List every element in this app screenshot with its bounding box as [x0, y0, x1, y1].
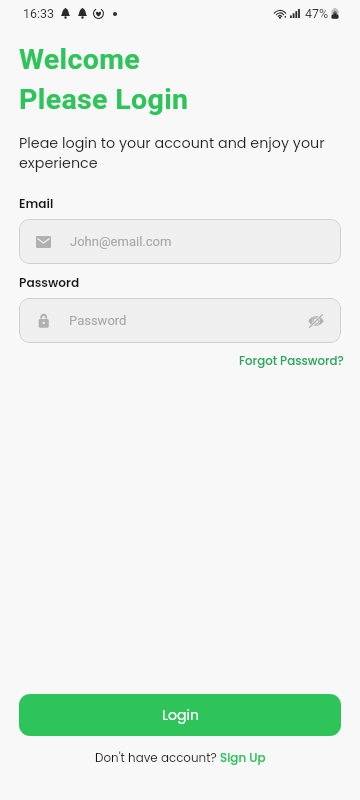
staticText: Login	[162, 705, 199, 725]
button[interactable]: Login	[19, 694, 341, 736]
button[interactable]: Show password	[305, 310, 327, 332]
button[interactable]: Password input	[19, 298, 341, 343]
staticText: Don't have account?	[95, 750, 220, 767]
staticText: Welcome Please Login	[19, 37, 189, 117]
staticText: 16:33	[23, 6, 55, 21]
staticText: Email	[19, 195, 54, 212]
staticText: Pleae login to your account and enjoy yo…	[19, 133, 335, 173]
staticText: 47%	[305, 6, 329, 21]
staticText: Forgot Password?	[239, 353, 344, 370]
button[interactable]: Sign Up	[220, 750, 266, 767]
button[interactable]: Forgot Password?	[229, 349, 354, 374]
staticText: John@email.com	[70, 234, 172, 249]
button[interactable]: Email input	[19, 219, 341, 264]
staticText: Sign Up	[220, 750, 266, 767]
staticText: Password	[19, 274, 80, 291]
staticText: Password	[69, 313, 127, 328]
